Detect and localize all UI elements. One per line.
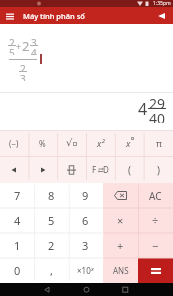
staticText: x [126, 137, 131, 149]
staticText: , [50, 263, 53, 278]
staticText: 2 [48, 238, 55, 253]
staticText: + [16, 40, 22, 52]
button[interactable]: 5 [34, 208, 68, 233]
staticText: 29 [149, 94, 166, 108]
button[interactable]: x [115, 130, 144, 156]
staticText: 4 [138, 98, 148, 120]
staticText: ANS [113, 265, 129, 276]
staticText: F [92, 164, 97, 175]
button[interactable] [156, 11, 166, 21]
staticText: AC [149, 189, 162, 203]
staticText: √ [66, 137, 73, 149]
staticText: 3 [20, 72, 26, 81]
staticText: × [117, 213, 124, 228]
button[interactable] [138, 258, 173, 283]
staticText: 9 [82, 188, 89, 203]
button[interactable]: + [103, 233, 138, 258]
staticText: ) [157, 163, 160, 177]
button[interactable]: F [86, 156, 115, 183]
button[interactable]: 2 [34, 233, 68, 258]
staticText: Máy tính phân số [23, 11, 85, 21]
button[interactable]: ) [144, 156, 173, 183]
staticText: − [152, 238, 159, 253]
button[interactable]: ( [115, 156, 144, 183]
button[interactable]: − [138, 233, 173, 258]
staticText: 8 [48, 188, 55, 203]
staticText: ( [128, 163, 131, 177]
button[interactable] [28, 156, 57, 183]
button[interactable]: x² [86, 130, 115, 156]
button[interactable]: π [144, 130, 173, 156]
staticText: ×10 [77, 265, 91, 276]
staticText: 2 [9, 36, 15, 45]
staticText: 40 [149, 109, 166, 123]
staticText: 0 [14, 263, 21, 278]
staticText: 4 [31, 46, 37, 55]
button[interactable]: % [28, 130, 57, 156]
button[interactable]: ÷ [138, 208, 173, 233]
staticText: (−) [9, 138, 19, 149]
staticText: π [156, 137, 162, 149]
button[interactable]: ANS [103, 258, 138, 283]
button[interactable] [4, 10, 16, 22]
staticText: x² [97, 137, 105, 149]
staticText: 2 [20, 62, 26, 71]
button[interactable]: 7 [0, 183, 34, 208]
button[interactable]: AC [138, 183, 173, 208]
staticText: 1:35pm [153, 0, 171, 7]
button[interactable]: √ [57, 130, 86, 156]
button[interactable] [0, 283, 57, 296]
staticText: x [91, 265, 94, 273]
staticText: ÷ [152, 213, 159, 228]
staticText: 5 [9, 46, 15, 55]
staticText: 3 [82, 238, 89, 253]
button[interactable]: 4 [0, 208, 34, 233]
button[interactable] [0, 156, 28, 183]
button[interactable] [57, 156, 86, 183]
button[interactable]: (−) [0, 130, 28, 156]
button[interactable]: × [103, 208, 138, 233]
button[interactable]: , [34, 258, 68, 283]
button[interactable]: 0 [0, 258, 34, 283]
button[interactable] [115, 283, 173, 296]
staticText: 5 [48, 213, 55, 228]
staticText: 6 [82, 213, 89, 228]
staticText: 1 [14, 238, 21, 253]
staticText: % [39, 138, 46, 149]
staticText: 7 [14, 188, 21, 203]
button[interactable]: 9 [68, 183, 103, 208]
staticText: D [103, 164, 109, 175]
staticText: + [117, 238, 124, 253]
button[interactable]: 3 [68, 233, 103, 258]
staticText: 2 [22, 37, 30, 55]
staticText: 4 [14, 213, 21, 228]
staticText: 3 [31, 36, 37, 45]
button[interactable] [57, 283, 115, 296]
button[interactable]: 8 [34, 183, 68, 208]
button[interactable] [103, 183, 138, 208]
button[interactable]: 6 [68, 208, 103, 233]
button[interactable]: ×10 [68, 258, 103, 283]
button[interactable]: 1 [0, 233, 34, 258]
